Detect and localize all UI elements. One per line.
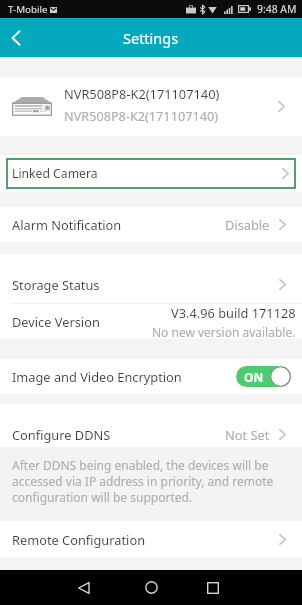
staticText: Disable xyxy=(225,216,270,233)
staticText: ON xyxy=(244,369,264,385)
button[interactable]: Configure DDNS xyxy=(0,421,302,447)
button[interactable]: Remote Configuration xyxy=(0,521,302,557)
staticText: No new version available. xyxy=(152,324,296,339)
staticText: Alarm Notification xyxy=(12,216,225,233)
staticText: V3.4.96 build 171128 xyxy=(171,304,296,321)
button[interactable]: Image and Video Encryption xyxy=(0,359,302,394)
button[interactable]: Storage Status xyxy=(0,265,302,303)
staticText: NVR508P8-K2(171107140) xyxy=(64,107,218,124)
staticText: Device Version xyxy=(12,313,152,330)
button[interactable]: Image and Video Encryption toggle xyxy=(236,366,291,387)
staticText: T-Mobile xyxy=(8,3,48,16)
button[interactable]: Back xyxy=(58,570,108,605)
staticText: Configure DDNS xyxy=(12,426,225,443)
staticText: Image and Video Encryption xyxy=(12,368,236,385)
button[interactable]: Back xyxy=(0,18,31,57)
staticText: 9:48 AM xyxy=(257,2,297,16)
staticText: After DDNS being enabled, the devices wi… xyxy=(12,457,282,505)
staticText: Linked Camera xyxy=(12,165,98,182)
button[interactable]: Recents xyxy=(188,570,238,605)
staticText: Remote Configuration xyxy=(12,531,279,548)
staticText: NVR508P8-K2(171107140) xyxy=(64,85,220,102)
button[interactable]: Home xyxy=(126,570,176,605)
button[interactable]: Alarm Notification xyxy=(0,207,302,242)
button[interactable]: NVR508P8-K2(171107140) xyxy=(0,77,302,136)
staticText: Not Set xyxy=(225,426,270,443)
button[interactable]: Device Version xyxy=(0,304,302,339)
button[interactable]: Linked Camera xyxy=(6,158,296,189)
staticText: Storage Status xyxy=(12,276,279,293)
staticText: Settings xyxy=(123,28,179,48)
